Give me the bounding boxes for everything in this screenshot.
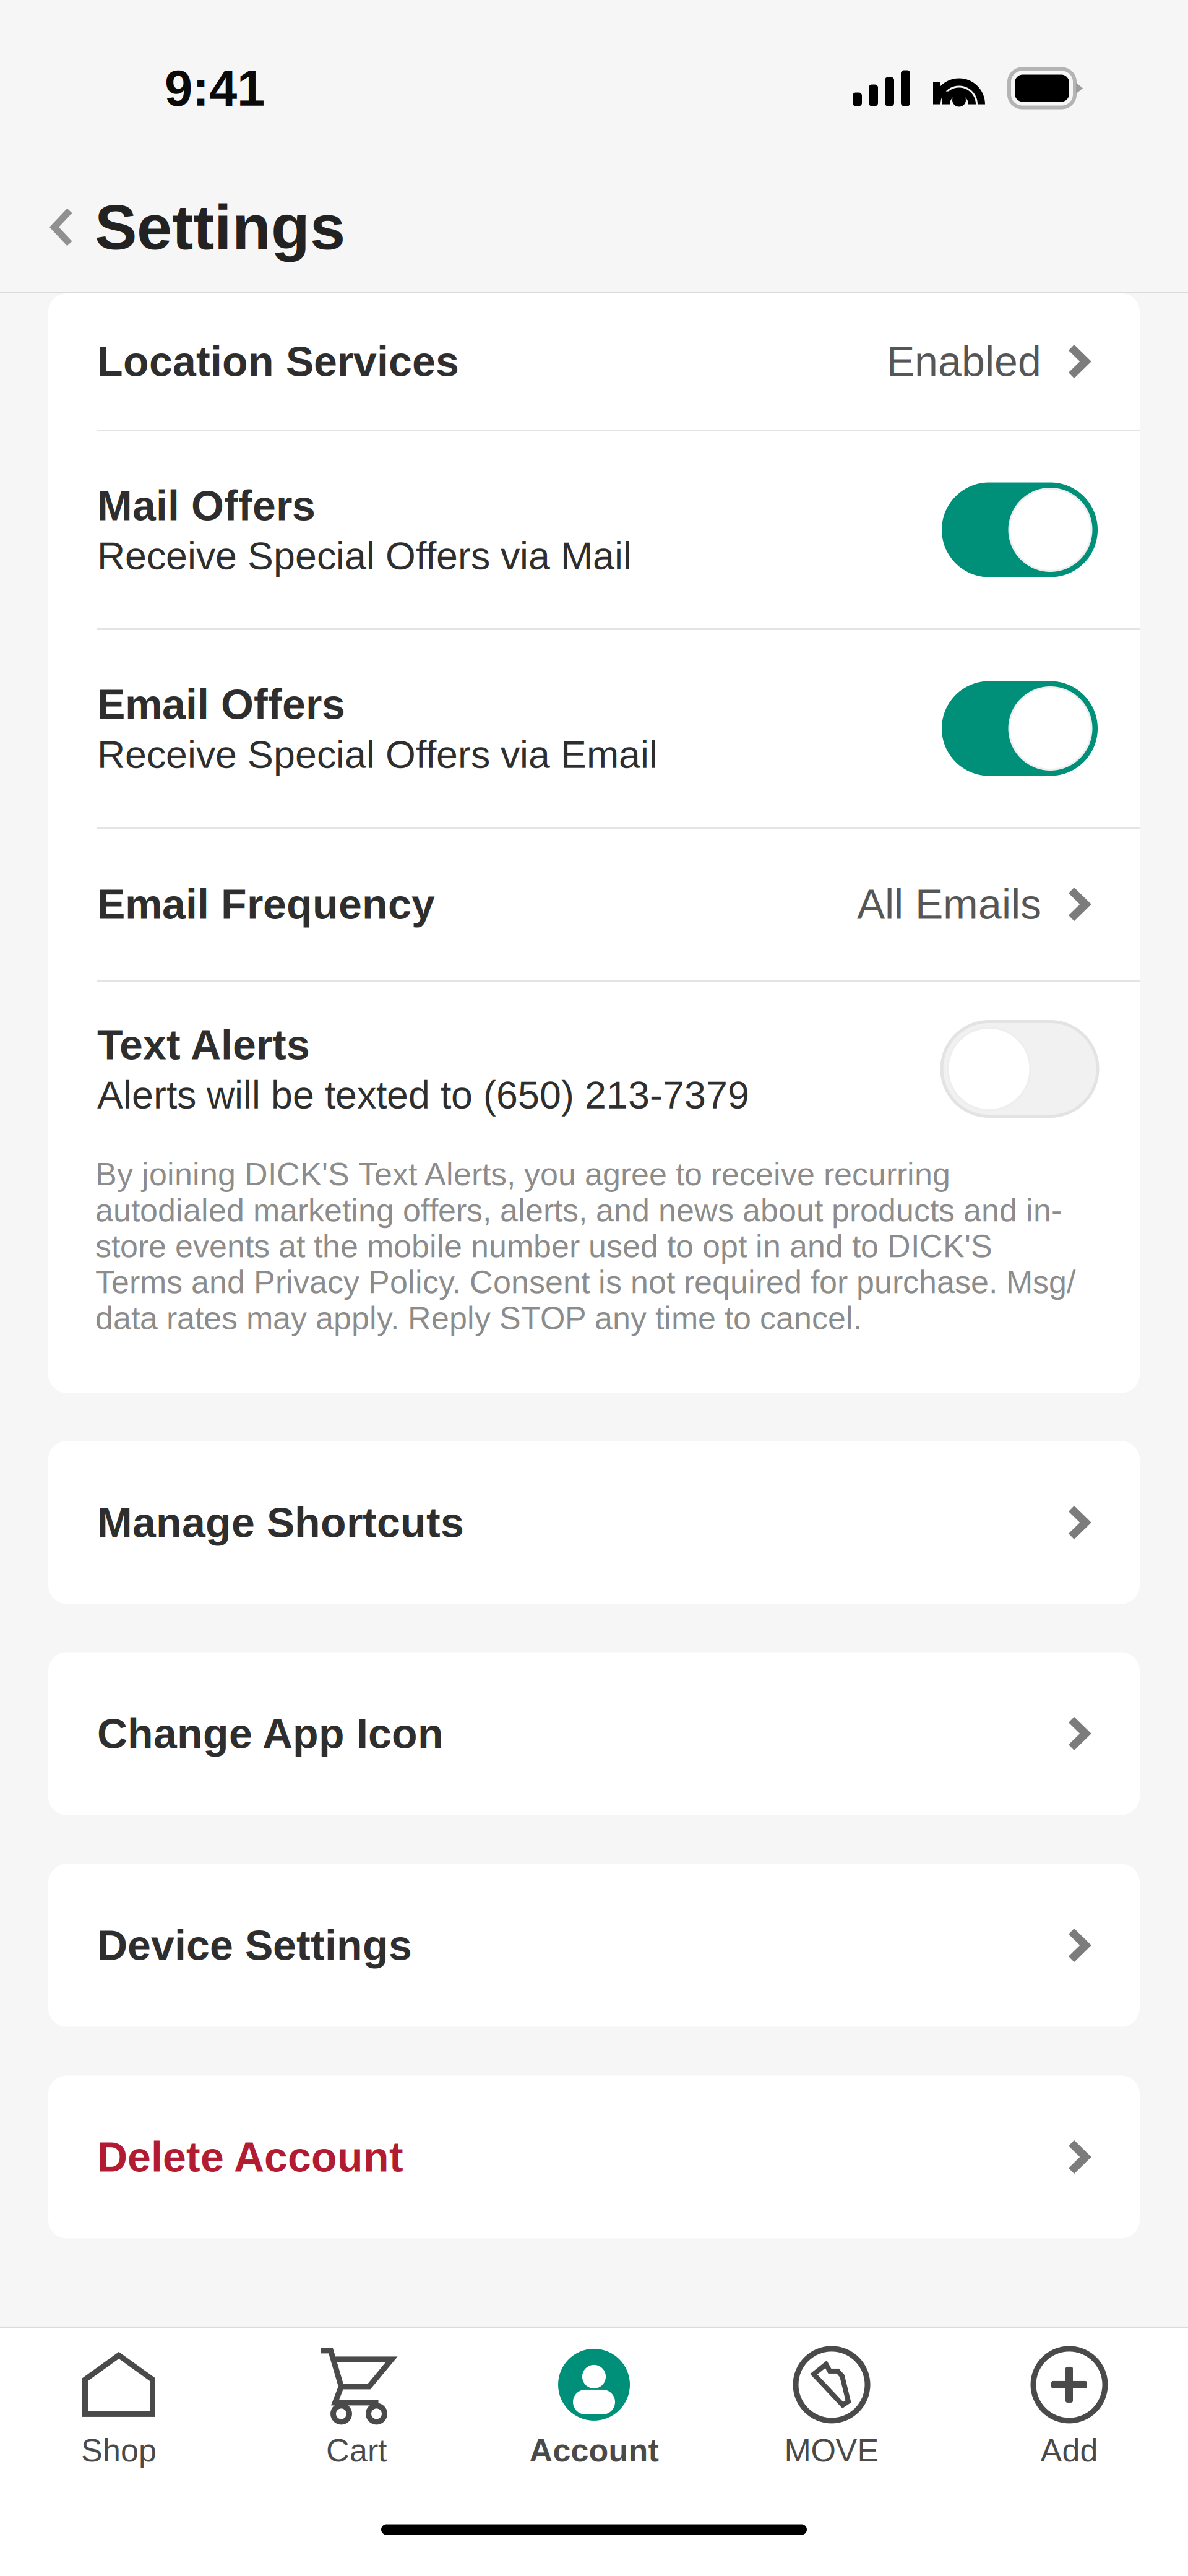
- staticText: Add: [1040, 2432, 1098, 2468]
- button[interactable]: Mail Offers: [48, 431, 1140, 628]
- staticText: Text Alerts: [97, 1021, 310, 1068]
- staticText: Enabled: [887, 338, 1041, 385]
- button[interactable]: Email Frequency: [48, 829, 1140, 980]
- staticText: Email Frequency: [97, 881, 435, 928]
- staticText: Location Services: [97, 338, 459, 385]
- staticText: Change App Icon: [97, 1710, 444, 1757]
- staticText: Delete Account: [97, 2133, 403, 2181]
- staticText: MOVE: [784, 2432, 879, 2468]
- staticText: 9:41: [165, 60, 265, 116]
- staticText: Mail Offers: [97, 482, 316, 529]
- staticText: Email Offers: [97, 681, 345, 728]
- button[interactable]: Location Services: [48, 293, 1140, 430]
- staticText: Manage Shortcuts: [97, 1499, 464, 1546]
- button[interactable]: Back: [0, 192, 95, 262]
- staticText: Receive Special Offers via Mail: [97, 534, 632, 577]
- staticText: Settings: [95, 192, 345, 263]
- button[interactable]: Device Settings: [0, 1864, 1188, 2027]
- staticText: Account: [529, 2432, 659, 2468]
- staticText: Alerts will be texted to (650) 213-7379: [97, 1073, 749, 1117]
- staticText: Shop: [81, 2432, 157, 2468]
- button[interactable]: Manage Shortcuts: [0, 1441, 1188, 1604]
- staticText: By joining DICK'S Text Alerts, you agree…: [95, 1156, 1075, 1336]
- button[interactable]: Add: [950, 2328, 1188, 2483]
- button[interactable]: Change App Icon: [0, 1652, 1188, 1815]
- button[interactable]: Delete Account: [0, 2076, 1188, 2238]
- staticText: All Emails: [857, 881, 1041, 928]
- button[interactable]: Email Offers: [48, 630, 1140, 827]
- button[interactable]: Cart: [238, 2328, 475, 2483]
- staticText: Device Settings: [97, 1922, 412, 1969]
- button[interactable]: MOVE: [713, 2328, 950, 2483]
- button[interactable]: Shop: [0, 2328, 238, 2483]
- staticText: Cart: [326, 2432, 387, 2468]
- button[interactable]: Text Alerts: [48, 982, 1140, 1156]
- staticText: Receive Special Offers via Email: [97, 733, 658, 776]
- button[interactable]: Account: [475, 2328, 713, 2483]
